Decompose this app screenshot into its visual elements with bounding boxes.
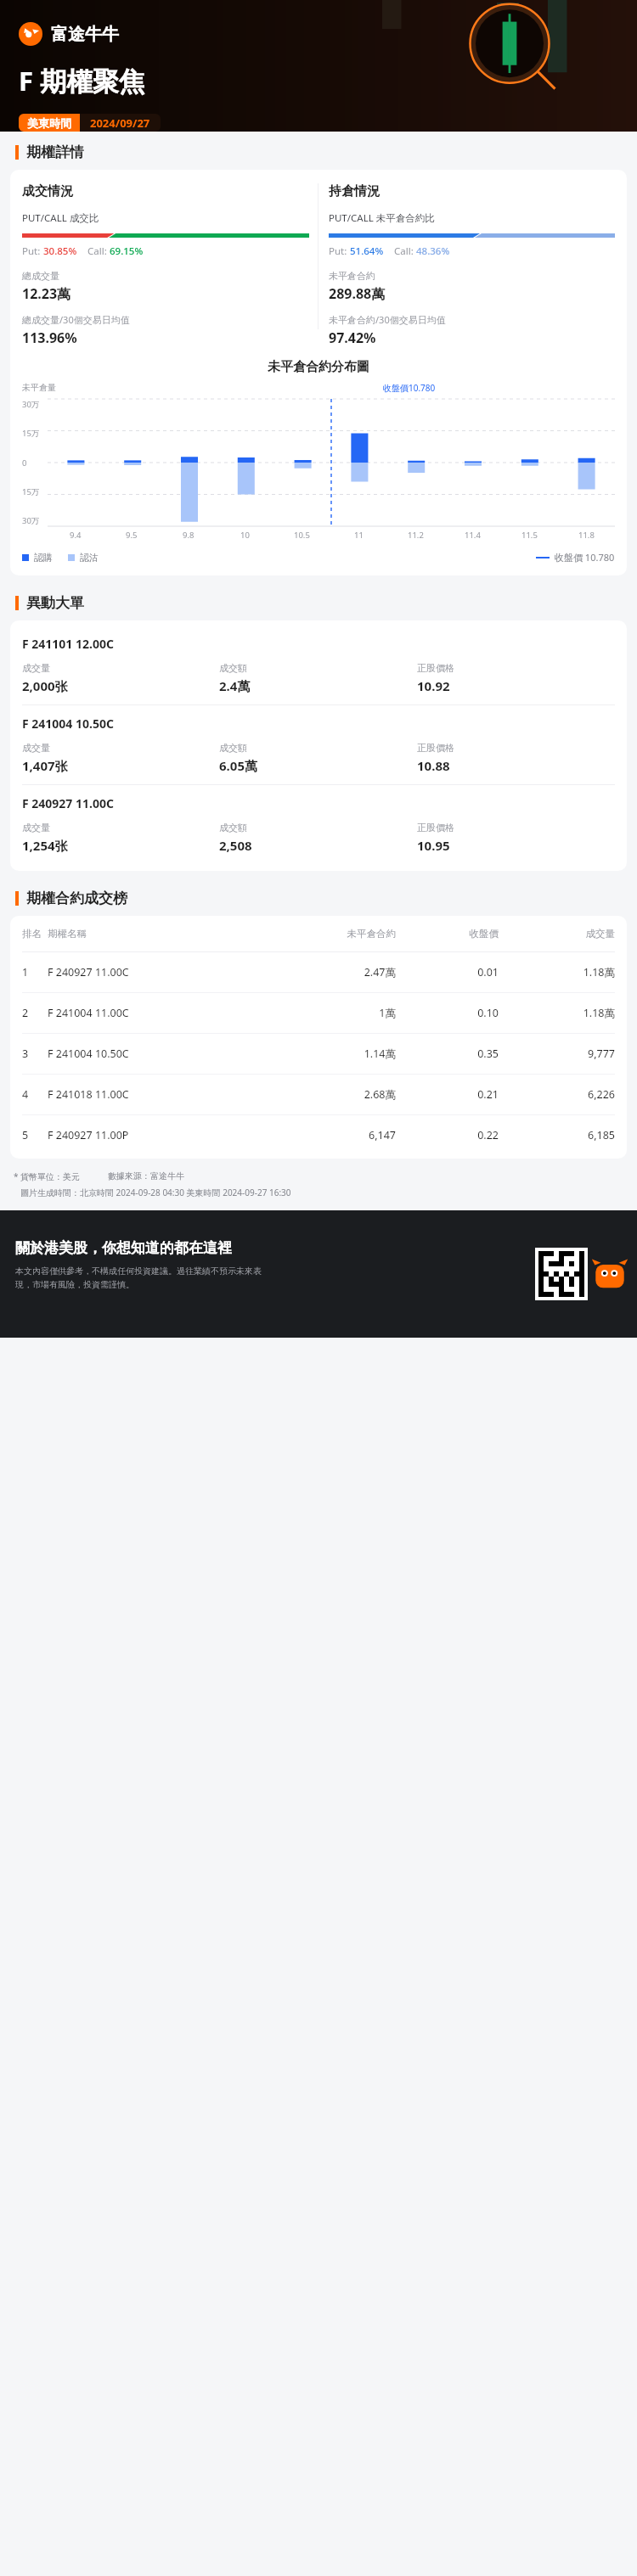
staticText: 持倉情況 bbox=[329, 183, 380, 199]
staticText: 美東時間 bbox=[27, 116, 71, 130]
staticText: 10.95 bbox=[417, 837, 450, 854]
staticText: 期權名稱 bbox=[48, 928, 254, 940]
staticText: 成交額 bbox=[219, 742, 247, 754]
staticText: 成交額 bbox=[219, 822, 247, 833]
staticText: F 240927 11.00C bbox=[22, 795, 114, 811]
staticText: F 241101 12.00C bbox=[22, 636, 114, 652]
staticText: 總成交量 bbox=[22, 270, 59, 282]
staticText: 正股價格 bbox=[417, 742, 454, 754]
staticText: * 貨幣單位：美元 bbox=[14, 1170, 81, 1182]
staticText: 成交量 bbox=[22, 742, 50, 754]
staticText: 成交量 bbox=[22, 662, 50, 674]
staticText: 10.92 bbox=[417, 677, 450, 694]
staticText: 正股價格 bbox=[417, 822, 454, 833]
staticText: 未平倉合約分布圖 bbox=[10, 359, 627, 375]
button[interactable]: 1 bbox=[10, 952, 627, 992]
staticText: Call: bbox=[87, 244, 107, 258]
staticText: Put: bbox=[22, 244, 41, 258]
staticText: 2,508 bbox=[219, 837, 252, 854]
staticText: 3 bbox=[22, 1047, 48, 1061]
staticText: 未平倉合約/30個交易日均值 bbox=[329, 313, 446, 326]
staticText: 成交情況 bbox=[22, 183, 73, 199]
staticText: 30.85% bbox=[43, 244, 77, 258]
staticText: 本文內容僅供參考，不構成任何投資建議。過往業績不預示未來表 bbox=[15, 1266, 262, 1277]
staticText: 0.10 bbox=[396, 1006, 499, 1020]
staticText: 1.18萬 bbox=[499, 1006, 615, 1020]
staticText: 9.8 bbox=[183, 530, 194, 541]
staticText: 0.22 bbox=[396, 1128, 499, 1142]
staticText: 2 bbox=[22, 1006, 48, 1020]
staticText: 0.01 bbox=[396, 965, 499, 979]
staticText: 15万 bbox=[22, 486, 40, 497]
staticText: 6.05萬 bbox=[219, 757, 257, 774]
button[interactable]: 4 bbox=[10, 1075, 627, 1114]
other: QR code bbox=[538, 1251, 584, 1297]
staticText: 富途牛牛 bbox=[51, 24, 119, 45]
button[interactable]: 5 bbox=[10, 1115, 627, 1155]
button[interactable]: 3 bbox=[10, 1034, 627, 1074]
staticText: F 241004 10.50C bbox=[22, 716, 114, 732]
staticText: 成交額 bbox=[219, 662, 247, 674]
staticText: 2024/09/27 bbox=[90, 115, 150, 131]
staticText: F 241004 10.50C bbox=[48, 1047, 254, 1061]
button[interactable]: F 241004 10.50C bbox=[10, 705, 627, 785]
staticText: PUT/CALL 成交比 bbox=[22, 211, 99, 225]
staticText: 11.4 bbox=[465, 530, 481, 541]
button[interactable]: 美東時間 bbox=[19, 114, 161, 132]
button[interactable]: 2 bbox=[10, 993, 627, 1033]
staticText: F 期權聚焦 bbox=[19, 63, 146, 98]
staticText: 4 bbox=[22, 1087, 48, 1102]
staticText: 5 bbox=[22, 1128, 48, 1142]
staticText: PUT/CALL 未平倉合約比 bbox=[329, 211, 435, 225]
staticText: 12.23萬 bbox=[22, 284, 71, 303]
staticText: F 240927 11.00P bbox=[48, 1128, 254, 1142]
staticText: 10 bbox=[240, 530, 250, 541]
staticText: Call: bbox=[394, 244, 414, 258]
button[interactable]: F 240927 11.00C bbox=[10, 785, 627, 864]
staticText: 51.64% bbox=[350, 244, 384, 258]
staticText: 成交量 bbox=[22, 822, 50, 833]
staticText: 未平倉合約 bbox=[254, 928, 396, 940]
staticText: 期權詳情 bbox=[26, 143, 84, 161]
staticText: 收盤價 bbox=[396, 928, 499, 940]
staticText: 1,407张 bbox=[22, 757, 68, 774]
button[interactable]: F 241101 12.00C bbox=[10, 626, 627, 705]
staticText: 2.68萬 bbox=[254, 1087, 396, 1102]
staticText: 113.96% bbox=[22, 328, 77, 347]
staticText: 期權合約成交榜 bbox=[26, 890, 127, 907]
staticText: 6,226 bbox=[499, 1087, 615, 1102]
staticText: 69.15% bbox=[110, 244, 144, 258]
staticText: 10.88 bbox=[417, 757, 450, 774]
staticText: 2.47萬 bbox=[254, 965, 396, 979]
staticText: 48.36% bbox=[416, 244, 450, 258]
staticText: 11.8 bbox=[578, 530, 595, 541]
staticText: 6,185 bbox=[499, 1128, 615, 1142]
staticText: 1.18萬 bbox=[499, 965, 615, 979]
staticText: 正股價格 bbox=[417, 662, 454, 674]
staticText: 0.21 bbox=[396, 1087, 499, 1102]
staticText: 2,000张 bbox=[22, 677, 68, 694]
staticText: F 240927 11.00C bbox=[48, 965, 254, 979]
staticText: 0 bbox=[22, 457, 27, 469]
staticText: 成交量 bbox=[499, 928, 615, 940]
staticText: 2.4萬 bbox=[219, 677, 251, 694]
staticText: 1萬 bbox=[254, 1006, 396, 1020]
staticText: 11.5 bbox=[521, 530, 538, 541]
staticText: 未平倉合約 bbox=[329, 270, 375, 282]
staticText: 1.14萬 bbox=[254, 1047, 396, 1061]
staticText: 30万 bbox=[22, 399, 40, 410]
staticText: 認購 bbox=[34, 552, 53, 564]
staticText: 收盤價10.780 bbox=[383, 382, 436, 394]
staticText: 15万 bbox=[22, 428, 40, 439]
staticText: 排名 bbox=[22, 928, 48, 940]
staticText: 1,254张 bbox=[22, 837, 68, 854]
staticText: 認沽 bbox=[80, 552, 99, 564]
staticText: 1 bbox=[22, 965, 48, 979]
staticText: 關於港美股，你想知道的都在這裡 bbox=[15, 1239, 232, 1257]
staticText: 11 bbox=[354, 530, 364, 541]
staticText: 6,147 bbox=[254, 1128, 396, 1142]
staticText: 97.42% bbox=[329, 328, 376, 347]
staticText: 9.5 bbox=[126, 530, 138, 541]
staticText: 圖片生成時間：北京時間 2024-09-28 04:30 美東時間 2024-0… bbox=[20, 1187, 291, 1198]
staticText: F 241004 11.00C bbox=[48, 1006, 254, 1020]
